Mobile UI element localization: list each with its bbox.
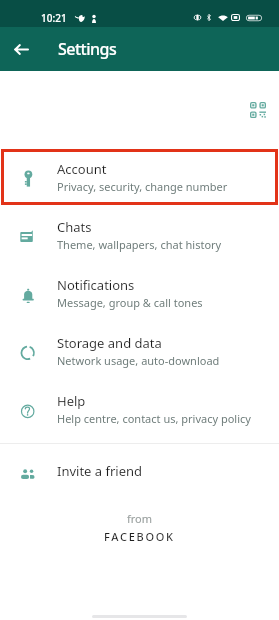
button[interactable]: Account bbox=[0, 148, 279, 206]
staticText: Account bbox=[57, 160, 107, 178]
button[interactable]: Back bbox=[6, 34, 36, 64]
staticText: from bbox=[127, 511, 153, 526]
staticText: Chats bbox=[57, 218, 92, 236]
button[interactable]: Storage and data bbox=[0, 322, 279, 380]
staticText: Settings bbox=[58, 38, 117, 60]
button[interactable]: Help bbox=[0, 380, 279, 438]
staticText: Help bbox=[57, 392, 86, 410]
staticText: Message, group & call tones bbox=[57, 295, 203, 310]
staticText: Theme, wallpapers, chat history bbox=[57, 237, 222, 252]
staticText: Network usage, auto-download bbox=[57, 353, 220, 368]
staticText: Invite a friend bbox=[57, 462, 143, 480]
staticText: 10:21 bbox=[41, 11, 67, 25]
staticText: FACEBOOK bbox=[104, 529, 175, 544]
staticText: Notifications bbox=[57, 276, 135, 294]
staticText: Privacy, security, change number bbox=[57, 179, 228, 194]
button[interactable]: Scan QR code bbox=[245, 97, 271, 123]
button[interactable]: Chats bbox=[0, 206, 279, 264]
staticText: Storage and data bbox=[57, 334, 162, 352]
staticText: Help centre, contact us, privacy policy bbox=[57, 411, 251, 426]
button[interactable]: Invite a friend bbox=[0, 444, 279, 497]
button[interactable]: Notifications bbox=[0, 264, 279, 322]
